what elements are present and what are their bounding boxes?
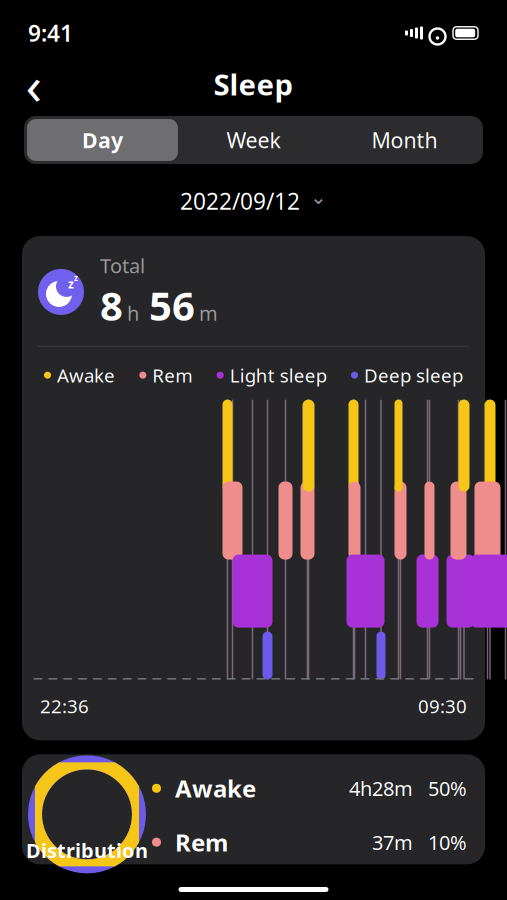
staticText: Rem <box>152 363 192 388</box>
staticText: 22:36 <box>40 694 89 718</box>
staticText: h <box>127 300 139 326</box>
staticText: ⌄ <box>310 186 327 208</box>
button[interactable]: Day <box>27 119 178 161</box>
staticText: Deep sleep <box>364 363 463 388</box>
staticText: 4h28m <box>349 775 413 802</box>
staticText: 9:41 <box>28 18 73 48</box>
staticText: 37m <box>372 829 413 855</box>
staticText: z <box>68 276 74 292</box>
staticText: 2022/09/12 <box>180 186 300 216</box>
staticText: m <box>199 300 218 326</box>
staticText: 56 <box>149 279 195 332</box>
staticText: 09:30 <box>418 694 467 718</box>
staticText: Rem <box>175 826 228 858</box>
staticText: Week <box>226 126 280 154</box>
staticText: Distribution <box>26 837 148 864</box>
staticText: 10% <box>428 829 467 855</box>
staticText: z <box>74 273 78 283</box>
button[interactable]: 2022/09/12 <box>166 176 341 226</box>
button[interactable]: Month <box>329 119 480 161</box>
button[interactable]: Back <box>12 62 56 106</box>
staticText: 8 <box>100 279 123 332</box>
staticText: ‹ <box>25 49 42 119</box>
button[interactable]: Week <box>178 119 329 161</box>
staticText: Month <box>371 126 437 154</box>
staticText: Awake <box>175 772 256 804</box>
staticText: Sleep <box>213 64 293 103</box>
staticText: 50% <box>428 775 467 802</box>
staticText: Awake <box>57 363 115 388</box>
staticText: Light sleep <box>230 363 327 388</box>
staticText: Day <box>82 126 123 154</box>
staticText: Total <box>100 252 145 279</box>
